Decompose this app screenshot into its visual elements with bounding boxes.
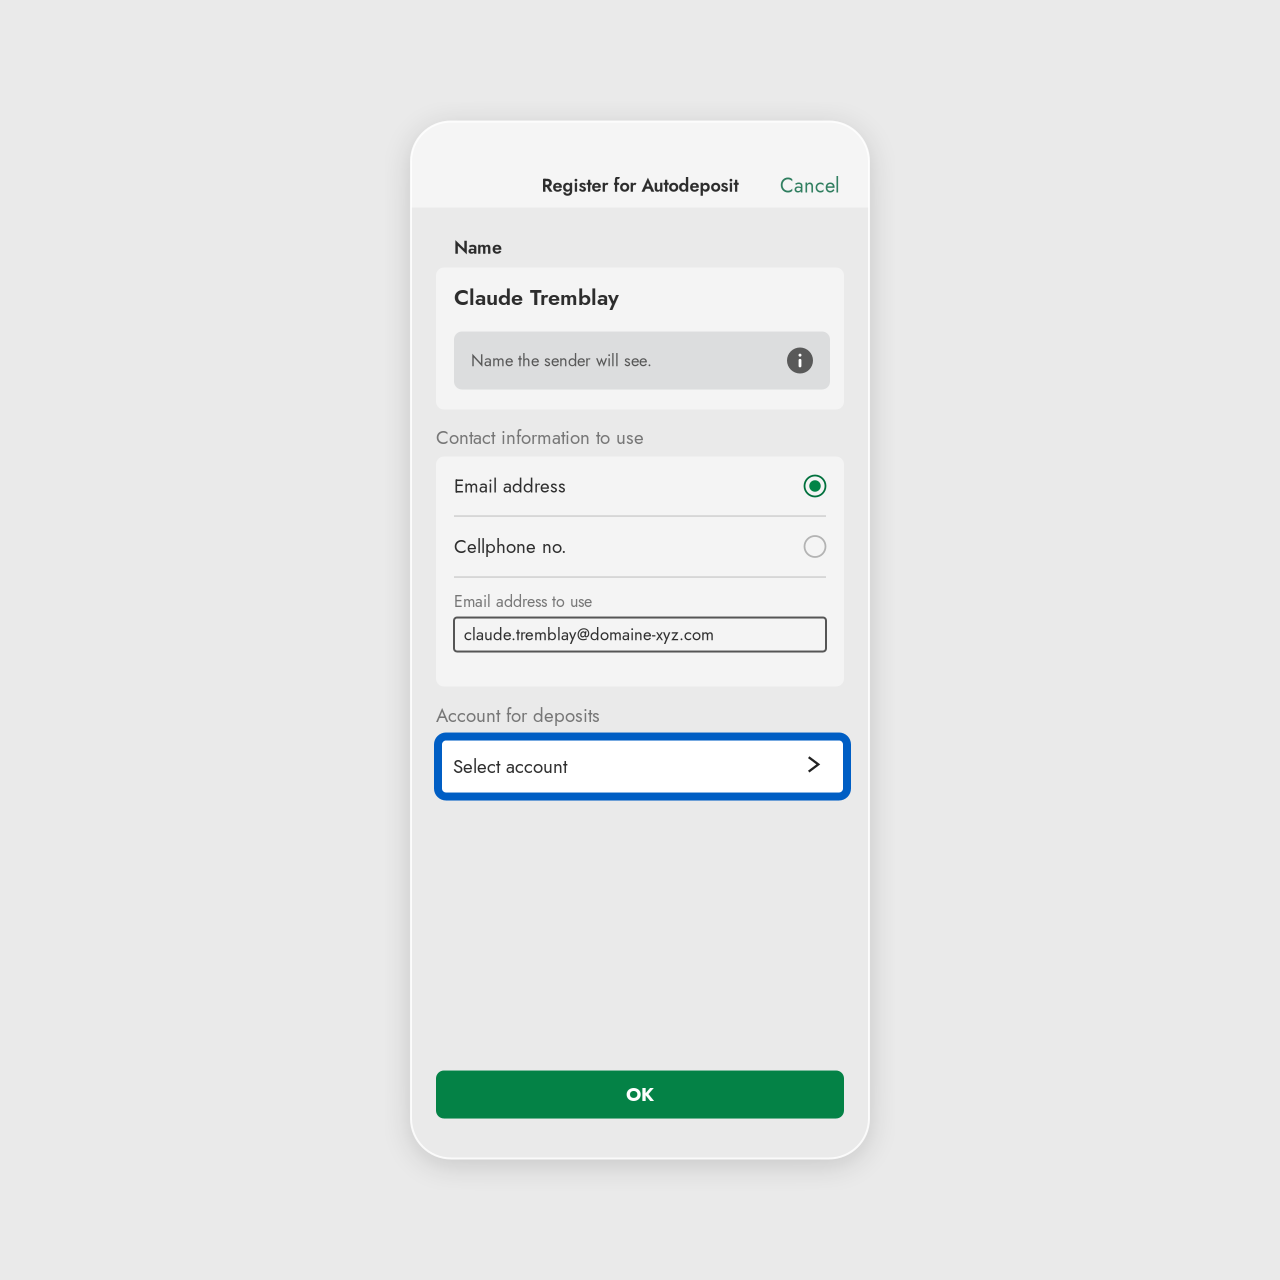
staticText: Contact information to use xyxy=(436,424,644,451)
button[interactable]: claude.tremblay@domaine-xyz.com xyxy=(454,617,826,651)
staticText: Claude Tremblay xyxy=(454,282,619,313)
staticText: Name the sender will see. xyxy=(471,349,652,372)
staticText: Name xyxy=(454,234,502,260)
staticText: Cellphone no. xyxy=(454,533,567,560)
button[interactable]: Select account xyxy=(434,732,851,800)
staticText: Email address xyxy=(454,472,566,499)
staticText: Email address to use xyxy=(454,590,592,613)
staticText: Account for deposits xyxy=(436,702,600,729)
button[interactable]: Cellphone no. xyxy=(436,516,844,576)
button[interactable]: Cancel xyxy=(772,163,848,207)
button[interactable]: Email address xyxy=(436,456,844,515)
staticText: Cancel xyxy=(780,171,840,200)
staticText: Register for Autodeposit xyxy=(541,172,738,198)
staticText: claude.tremblay@domaine-xyz.com xyxy=(464,622,714,647)
button[interactable]: OK xyxy=(436,1070,844,1118)
button[interactable]: More information about the display name xyxy=(787,347,813,373)
staticText: Select account xyxy=(453,753,567,780)
staticText: OK xyxy=(626,1081,654,1108)
